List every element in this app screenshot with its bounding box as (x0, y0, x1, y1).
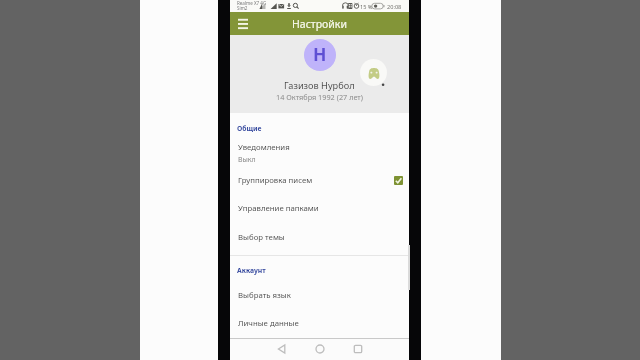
button[interactable]: Games (360, 59, 387, 86)
staticText: Газизов Нурбол (284, 79, 355, 92)
button[interactable]: Выбор темы (230, 225, 409, 247)
staticText: Настройки (292, 17, 347, 31)
button[interactable]: Личные данные (230, 311, 409, 333)
button[interactable]: Группировка писем (230, 168, 409, 190)
staticText: 14 Октября 1992 (27 лет) (276, 92, 363, 102)
staticText: Выбор темы (238, 232, 285, 243)
staticText: Realme X7 4G (237, 0, 267, 6)
staticText: Общие (237, 124, 262, 133)
button[interactable]: Управление папками (230, 196, 409, 218)
staticText: Группировка писем (238, 175, 313, 186)
staticText: Личные данные (238, 318, 299, 329)
button[interactable]: Выбрать язык (230, 283, 409, 305)
button[interactable]: Back (273, 340, 291, 358)
staticText: Выкл (238, 155, 256, 165)
staticText: H (313, 42, 327, 66)
staticText: Sim2 (237, 5, 248, 11)
button[interactable]: Уведомления (230, 135, 409, 163)
staticText: Управление папками (238, 203, 319, 214)
staticText: 15 % (360, 3, 373, 11)
staticText: Аккаунт (237, 266, 266, 275)
staticText: Выбрать язык (238, 290, 291, 301)
button[interactable]: Home (311, 340, 329, 358)
staticText: 20:08 (387, 3, 402, 11)
button[interactable]: Open navigation menu (234, 15, 252, 33)
staticText: Уведомления (238, 142, 290, 153)
button[interactable]: Recent apps (349, 340, 367, 358)
